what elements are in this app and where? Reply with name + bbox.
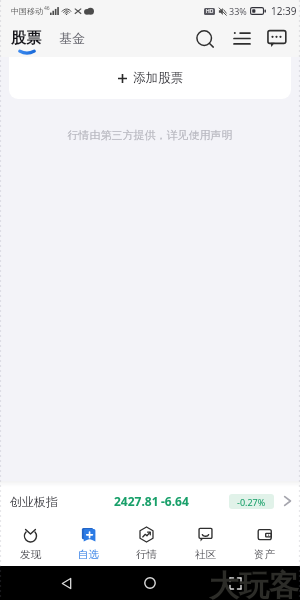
- staticText: 12:39: [271, 4, 297, 18]
- button[interactable]: 自选: [59, 521, 117, 566]
- button[interactable]: 创业板指: [0, 481, 300, 521]
- staticText: 资产: [254, 548, 275, 561]
- staticText: 2427.81: [114, 493, 159, 509]
- button[interactable]: 添加股票: [9, 57, 291, 99]
- staticText: 行情由第三方提供，详见使用声明: [0, 128, 300, 142]
- staticText: -0.27%: [237, 496, 266, 508]
- button[interactable]: 发现: [1, 521, 59, 566]
- staticText: 46: [44, 5, 50, 12]
- staticText: -6.64: [161, 493, 189, 509]
- staticText: 添加股票: [133, 70, 183, 86]
- staticText: 发现: [20, 548, 41, 561]
- button[interactable]: Search: [192, 26, 217, 51]
- staticText: HD: [206, 8, 214, 15]
- staticText: 行情: [136, 548, 157, 561]
- staticText: 33%: [229, 5, 247, 17]
- staticText: 自选: [78, 548, 99, 561]
- button[interactable]: 基金: [50, 22, 94, 57]
- staticText: 基金: [59, 30, 85, 46]
- button[interactable]: 股票: [5, 22, 47, 57]
- button[interactable]: Home: [131, 566, 169, 600]
- button[interactable]: Menu: [229, 26, 254, 51]
- staticText: 大玩客: [209, 567, 299, 600]
- button[interactable]: Messages: [264, 26, 289, 51]
- button[interactable]: 资产: [235, 521, 294, 566]
- button[interactable]: 行情: [117, 521, 176, 566]
- staticText: 股票: [11, 29, 41, 48]
- button[interactable]: Recents: [216, 566, 254, 600]
- staticText: 中国移动: [11, 6, 43, 16]
- staticText: 创业板指: [10, 494, 58, 509]
- button[interactable]: 社区: [176, 521, 235, 566]
- staticText: 社区: [195, 548, 216, 561]
- button[interactable]: Back: [47, 566, 85, 600]
